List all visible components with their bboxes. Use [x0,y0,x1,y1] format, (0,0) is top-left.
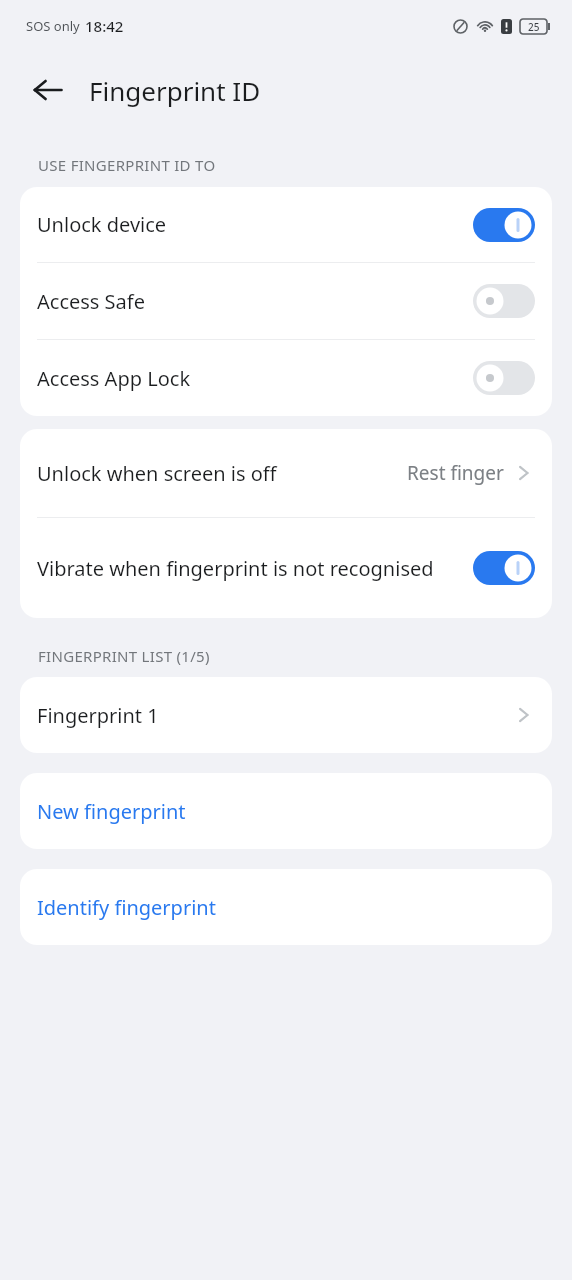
staticText: Access Safe [37,288,461,315]
staticText: Fingerprint ID [89,73,261,108]
staticText: SOS only [26,17,80,35]
staticText: Identify fingerprint [37,894,216,921]
button[interactable]: Identify fingerprint [20,869,552,945]
staticText: Fingerprint 1 [37,702,159,729]
button[interactable]: Unlock device [20,187,552,262]
button[interactable]: Fingerprint 1 [20,677,552,753]
button[interactable]: Access App Lock [20,340,552,416]
button[interactable]: Back [20,62,76,118]
staticText: FINGERPRINT LIST (1/5) [38,646,210,666]
staticText: Access App Lock [37,365,461,392]
staticText: Unlock device [37,211,461,238]
button[interactable]: New fingerprint [20,773,552,849]
staticText: New fingerprint [37,798,186,825]
button[interactable]: Vibrate when fingerprint is not recognis… [20,518,552,618]
button[interactable]: Unlock when screen is off [20,429,552,517]
staticText: 25 [528,20,540,34]
staticText: USE FINGERPRINT ID TO [38,155,216,175]
staticText: Vibrate when fingerprint is not recognis… [37,555,461,582]
staticText: 18:42 [85,16,124,36]
staticText: Unlock when screen is off [37,460,277,487]
staticText: Rest finger [407,460,504,486]
button[interactable]: Access Safe [20,263,552,339]
